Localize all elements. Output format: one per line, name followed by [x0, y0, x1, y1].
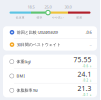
- staticText: 体脂肪率(%): [16, 88, 37, 93]
- staticText: -0.2 ↓: [82, 79, 91, 82]
- button[interactable]: 体脂肪率(%): [3, 83, 97, 97]
- staticText: 体重(kg): [16, 59, 30, 64]
- staticText: -0.6 ↓: [82, 64, 91, 68]
- staticText: 肥満: [76, 16, 82, 19]
- button[interactable]: 30日間のベストウェイト: [3, 39, 97, 51]
- staticText: 75.55: [73, 55, 91, 64]
- staticText: 30.0: [64, 4, 71, 10]
- button[interactable]: 体重(kg): [3, 55, 97, 69]
- staticText: 標準: [36, 16, 42, 19]
- button[interactable]: BMI: [3, 69, 97, 83]
- staticText: 24.1: [77, 70, 91, 78]
- staticText: 18.5: [27, 4, 34, 10]
- staticText: やや高い: [52, 16, 64, 19]
- staticText: 21.3: [77, 84, 91, 93]
- staticText: 30日間のベストウェイト: [17, 42, 61, 47]
- button[interactable]: 前回と比較 (2024/03/20): [3, 26, 97, 38]
- staticText: 25.0: [44, 4, 51, 10]
- staticText: 前回と比較 (2024/03/20): [17, 30, 58, 35]
- staticText: 低体重: [16, 16, 25, 19]
- staticText: -0.6: [85, 30, 91, 35]
- staticText: -0.1 ↓: [82, 93, 91, 97]
- staticText: --: [89, 42, 91, 47]
- staticText: BMI: [16, 73, 24, 79]
